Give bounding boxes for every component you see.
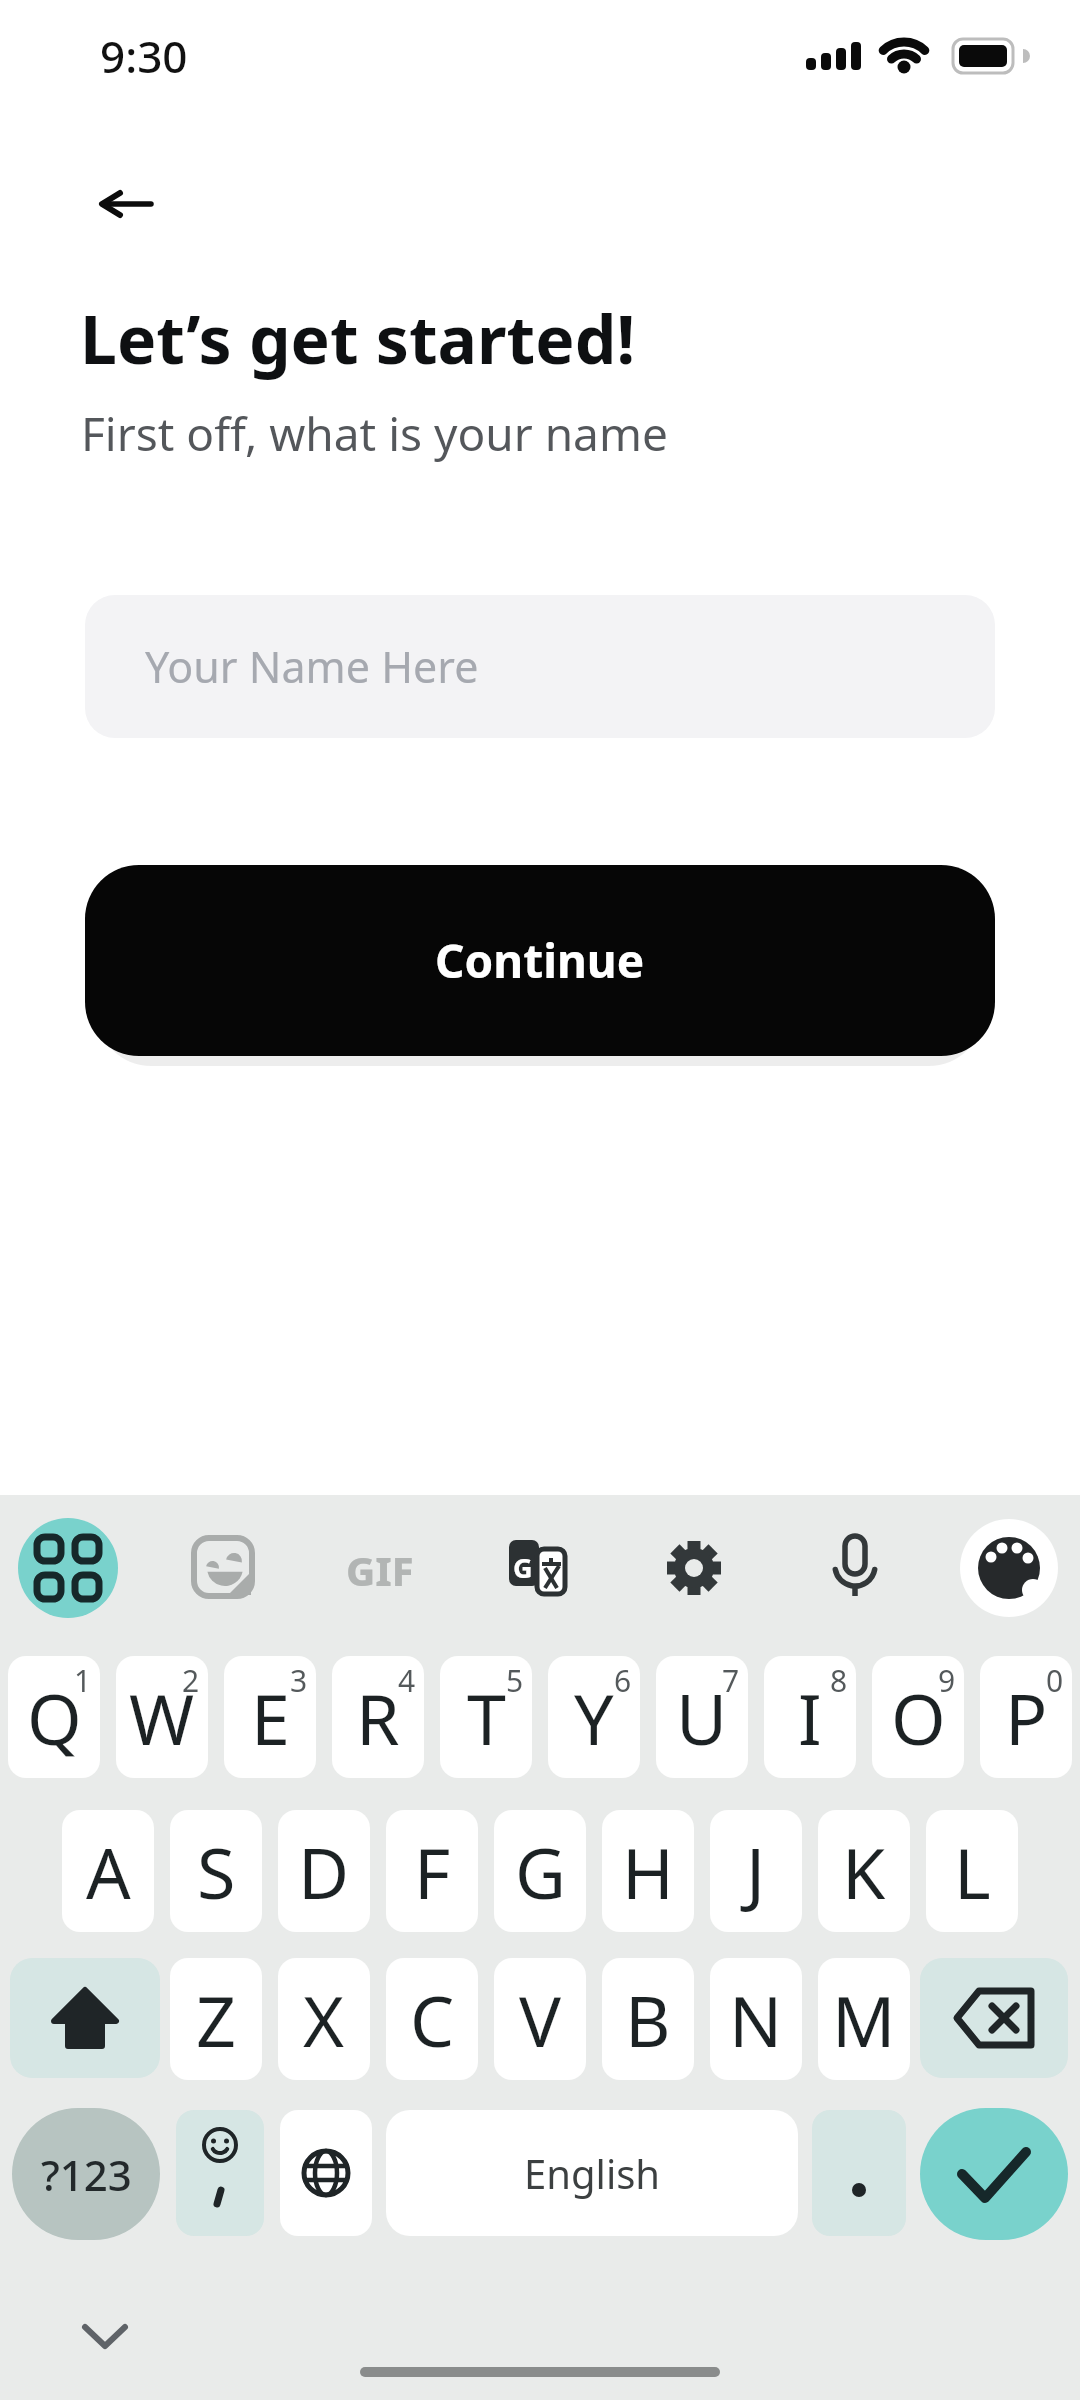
button[interactable]: R (332, 1656, 424, 1778)
button[interactable]: I (764, 1656, 856, 1778)
button[interactable]: Continue (85, 865, 995, 1056)
staticText: GIF (346, 1543, 414, 1597)
button[interactable] (812, 2110, 906, 2236)
staticText: Z (196, 1972, 237, 2067)
button[interactable]: T (440, 1656, 532, 1778)
staticText: 9:30 (100, 26, 188, 86)
staticText: E (251, 1670, 290, 1765)
staticText: Your Name Here (145, 637, 479, 696)
staticText: A (86, 1824, 131, 1919)
button[interactable]: GIF (330, 1540, 430, 1600)
staticText: ?123 (41, 2146, 132, 2203)
button[interactable]: H (602, 1810, 694, 1932)
staticText: B (625, 1972, 671, 2067)
button[interactable]: G (509, 1538, 567, 1598)
staticText: K (842, 1824, 886, 1919)
button[interactable]: K (818, 1810, 910, 1932)
button[interactable]: A (62, 1810, 154, 1932)
button[interactable]: V (494, 1958, 586, 2080)
staticText: F (414, 1824, 451, 1919)
button[interactable]: Q (8, 1656, 100, 1778)
button[interactable] (18, 1518, 118, 1618)
staticText: 1 (74, 1660, 92, 1701)
button[interactable]: Your Name Here (85, 595, 995, 738)
button[interactable]: Y (548, 1656, 640, 1778)
staticText: M (832, 1972, 896, 2067)
button[interactable]: C (386, 1958, 478, 2080)
button[interactable]: L (926, 1810, 1018, 1932)
button[interactable]: G (494, 1810, 586, 1932)
staticText: L (954, 1824, 991, 1919)
staticText: W (129, 1670, 195, 1765)
button[interactable] (920, 2108, 1068, 2240)
button[interactable]: E (224, 1656, 316, 1778)
button[interactable]: W (116, 1656, 208, 1778)
button[interactable]: N (710, 1958, 802, 2080)
button[interactable] (827, 1534, 883, 1600)
staticText: X (303, 1972, 345, 2067)
staticText: G (515, 1824, 566, 1919)
staticText: P (1005, 1670, 1048, 1765)
staticText: English (524, 2146, 661, 2200)
staticText: 0 (1046, 1660, 1064, 1701)
staticText: J (746, 1824, 766, 1919)
button[interactable] (176, 2110, 264, 2236)
staticText: 4 (398, 1660, 416, 1701)
button[interactable] (65, 2305, 145, 2365)
button[interactable] (10, 1958, 160, 2078)
staticText: N (729, 1972, 783, 2067)
staticText: First off, what is your name (81, 402, 668, 465)
staticText: T (467, 1670, 506, 1765)
button[interactable]: D (278, 1810, 370, 1932)
button[interactable]: J (710, 1810, 802, 1932)
staticText: 7 (722, 1660, 740, 1701)
button[interactable]: P (980, 1656, 1072, 1778)
button[interactable] (280, 2110, 372, 2236)
staticText: D (298, 1824, 350, 1919)
button[interactable]: O (872, 1656, 964, 1778)
button[interactable] (920, 1958, 1068, 2078)
staticText: Continue (435, 929, 645, 992)
button[interactable] (960, 1519, 1058, 1617)
button[interactable]: Z (170, 1958, 262, 2080)
button[interactable] (190, 1534, 262, 1606)
button[interactable]: English (386, 2110, 798, 2236)
staticText: S (197, 1824, 236, 1919)
staticText: C (410, 1972, 455, 2067)
staticText: U (676, 1670, 728, 1765)
staticText: Let’s get started! (80, 293, 635, 383)
staticText: G (513, 1549, 533, 1586)
staticText: Y (574, 1670, 614, 1765)
staticText: R (356, 1670, 400, 1765)
staticText: I (798, 1670, 822, 1765)
button[interactable] (664, 1538, 724, 1598)
button[interactable]: B (602, 1958, 694, 2080)
button[interactable]: U (656, 1656, 748, 1778)
staticText: 3 (290, 1660, 308, 1701)
button[interactable]: S (170, 1810, 262, 1932)
button[interactable]: X (278, 1958, 370, 2080)
button[interactable] (80, 170, 170, 240)
button[interactable]: ?123 (12, 2108, 160, 2240)
staticText: 9 (938, 1660, 956, 1701)
staticText: 5 (506, 1660, 524, 1701)
staticText: 8 (830, 1660, 848, 1701)
button[interactable]: M (818, 1958, 910, 2080)
staticText: 2 (182, 1660, 200, 1701)
staticText: H (622, 1824, 674, 1919)
staticText: Q (27, 1670, 82, 1765)
button[interactable]: F (386, 1810, 478, 1932)
staticText: O (891, 1670, 946, 1765)
staticText: V (519, 1972, 561, 2067)
staticText: 6 (614, 1660, 632, 1701)
